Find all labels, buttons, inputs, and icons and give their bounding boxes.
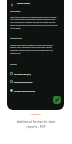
button[interactable]: Portable document format bbox=[10, 87, 56, 94]
staticText: Format bbox=[10, 63, 17, 66]
staticText: Simple text files (TXT) bbox=[14, 73, 31, 75]
staticText: Additional format for data reports - PDF bbox=[0, 120, 72, 129]
staticText: Premium bbox=[0, 113, 72, 116]
staticText: Satellite data bbox=[10, 37, 23, 40]
button[interactable]: Back bbox=[8, 1, 15, 8]
staticText: Satellite information is available to us… bbox=[10, 44, 58, 55]
staticText: Description bbox=[10, 10, 21, 13]
button[interactable]: Simple text files (TXT) bbox=[10, 70, 56, 77]
button[interactable]: General representation bbox=[10, 78, 56, 85]
staticText: Portable document format bbox=[14, 90, 36, 92]
staticText: General representation bbox=[14, 81, 33, 83]
staticText: Mobile report bbox=[17, 2, 31, 5]
staticText: This function allows you to save informa… bbox=[10, 16, 58, 30]
button[interactable]: Edit bbox=[53, 96, 61, 104]
